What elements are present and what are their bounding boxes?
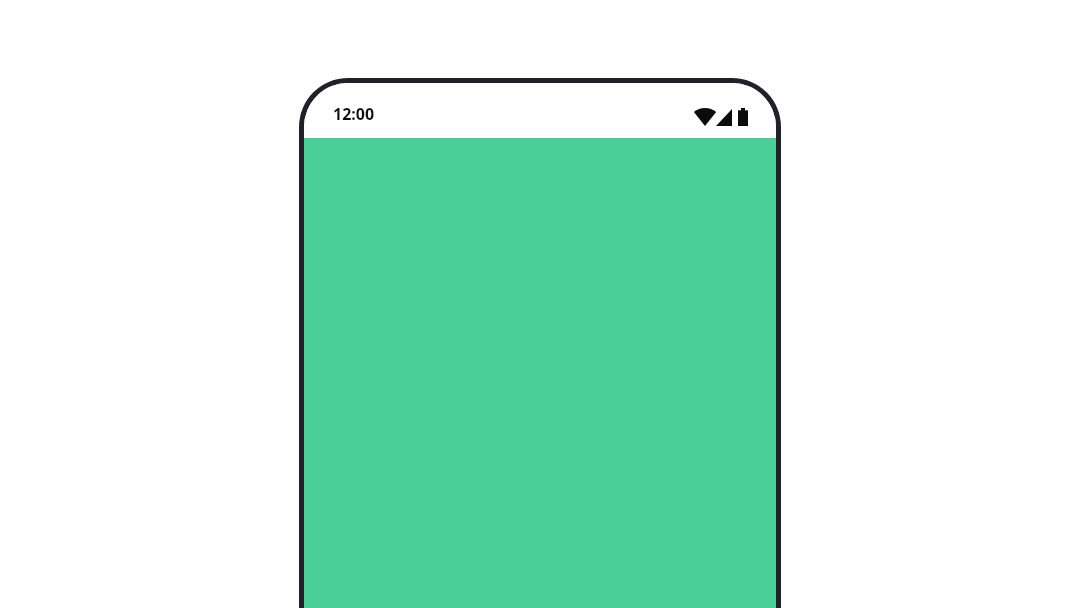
other: Wi-Fi signal — [695, 108, 715, 126]
other: Battery — [738, 108, 748, 126]
staticText: 12:00 — [333, 103, 375, 125]
other: Mobile signal — [716, 109, 732, 126]
